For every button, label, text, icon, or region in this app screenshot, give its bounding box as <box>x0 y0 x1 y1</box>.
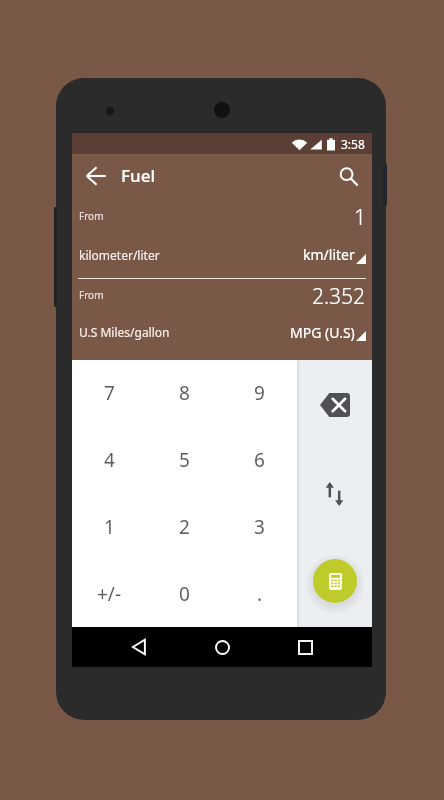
button[interactable]: From <box>72 279 372 310</box>
button[interactable]: 0 <box>147 560 222 627</box>
staticText: From <box>79 288 104 302</box>
staticText: 3:58 <box>341 136 365 152</box>
button[interactable]: 8 <box>147 360 222 426</box>
staticText: km/liter <box>303 245 355 264</box>
button[interactable]: Recents <box>289 631 321 663</box>
staticText: 4 <box>104 447 115 473</box>
staticText: U.S Miles/gallon <box>79 324 170 340</box>
staticText: Fuel <box>121 164 155 187</box>
staticText: 5 <box>179 447 190 473</box>
button[interactable]: Back <box>123 631 155 663</box>
button[interactable]: 3 <box>222 493 297 560</box>
button[interactable]: Calculator <box>313 559 357 603</box>
button[interactable]: 6 <box>222 426 297 493</box>
staticText: 3 <box>254 514 265 540</box>
staticText: MPG (U.S) <box>290 323 355 342</box>
staticText: 9 <box>254 380 265 406</box>
button[interactable]: Home <box>206 631 238 663</box>
staticText: From <box>79 209 104 223</box>
button[interactable]: +/- <box>72 560 147 627</box>
staticText: 1 <box>104 514 115 540</box>
staticText: 2.352 <box>312 282 366 311</box>
staticText: 2 <box>179 514 190 540</box>
staticText: 7 <box>104 380 115 406</box>
button[interactable]: From <box>72 198 372 233</box>
button[interactable]: 2 <box>147 493 222 560</box>
button[interactable]: 9 <box>222 360 297 426</box>
staticText: 0 <box>179 581 190 607</box>
button[interactable]: 1 <box>72 493 147 560</box>
button[interactable]: Swap units <box>297 450 372 537</box>
staticText: 8 <box>179 380 190 406</box>
button[interactable]: . <box>222 560 297 627</box>
staticText: . <box>257 581 263 607</box>
button[interactable]: Search <box>329 157 367 195</box>
button[interactable]: kilometer/liter <box>72 233 372 272</box>
button[interactable]: Back <box>77 157 115 195</box>
staticText: 6 <box>254 447 265 473</box>
button[interactable]: 5 <box>147 426 222 493</box>
button[interactable]: 7 <box>72 360 147 426</box>
staticText: kilometer/liter <box>79 247 160 263</box>
staticText: +/- <box>97 581 122 607</box>
button[interactable]: Backspace <box>297 360 372 450</box>
staticText: 1 <box>354 203 366 232</box>
button[interactable]: U.S Miles/gallon <box>72 310 372 352</box>
button[interactable]: 4 <box>72 426 147 493</box>
